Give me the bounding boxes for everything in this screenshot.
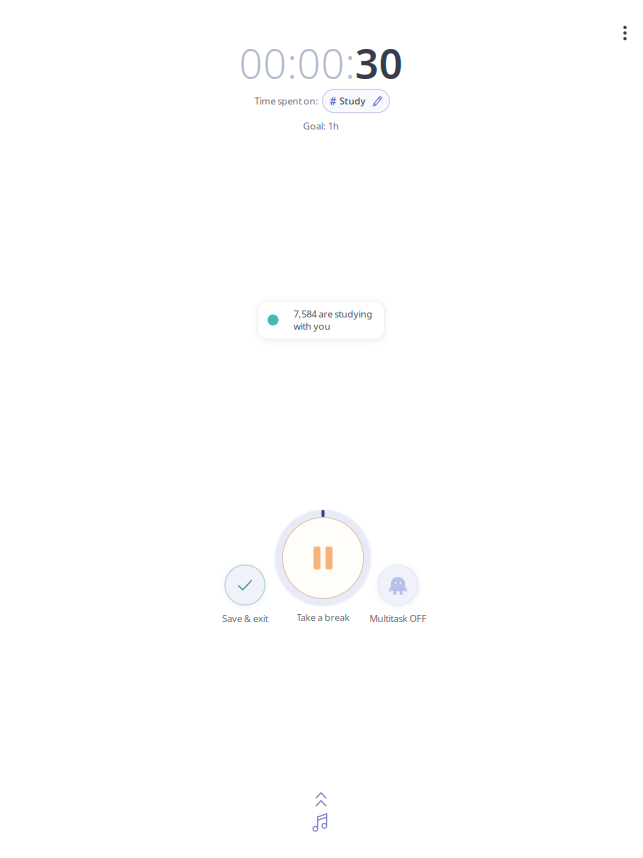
button[interactable]: Multitask OFF <box>360 565 436 623</box>
staticText: 00:00: <box>239 36 355 90</box>
button[interactable]: More options <box>612 18 638 48</box>
staticText: Take a break <box>296 611 349 624</box>
staticText: Goal: 1h <box>303 120 339 132</box>
staticText: 7,584 are studying with you <box>293 308 372 332</box>
button[interactable]: # <box>322 89 389 113</box>
staticText: # <box>329 94 336 108</box>
staticText: 30 <box>355 36 403 90</box>
button[interactable]: Open music <box>295 787 347 837</box>
button[interactable]: Save & exit <box>207 565 283 623</box>
staticText: Multitask OFF <box>369 612 426 625</box>
staticText: Time spent on: <box>254 95 318 107</box>
staticText: Study <box>339 95 365 107</box>
staticText: Save & exit <box>222 612 268 625</box>
button[interactable]: Take a break <box>271 508 375 622</box>
